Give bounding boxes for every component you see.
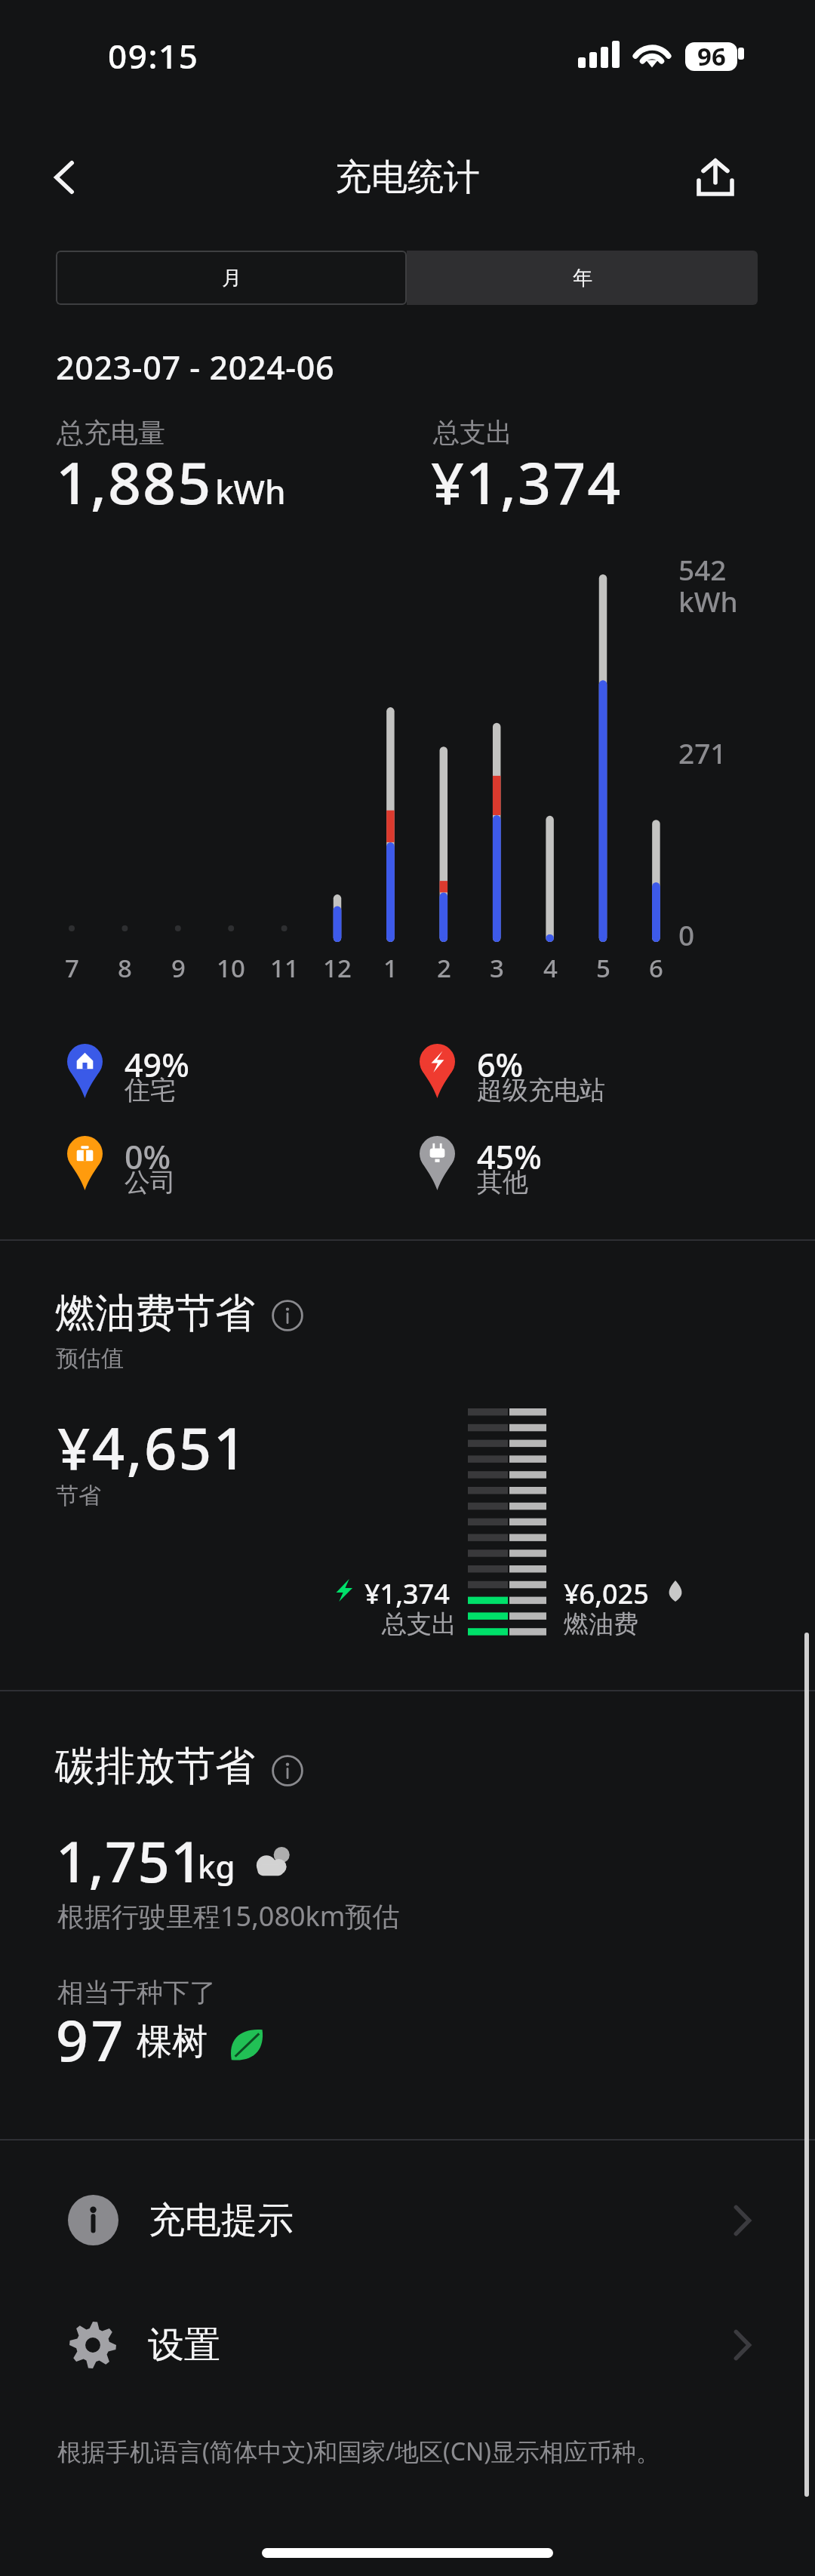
staticText: ¥1,374 xyxy=(364,1575,450,1612)
staticText: 271 xyxy=(678,734,727,771)
staticText: 49% xyxy=(125,1042,189,1087)
staticText: 12 xyxy=(323,951,352,985)
staticText: 2023-07 - 2024-06 xyxy=(56,345,335,389)
staticText: 月 xyxy=(222,266,241,291)
staticText: 4 xyxy=(543,951,558,985)
staticText: 超级充电站 xyxy=(477,1074,605,1106)
staticText: 7 xyxy=(65,951,79,985)
staticText: 碳排放节省 xyxy=(55,1741,255,1792)
staticText: 相当于种下了 xyxy=(57,1976,216,2009)
staticText: 45% xyxy=(477,1134,542,1179)
staticText: 3 xyxy=(490,951,504,985)
staticText: 总支出 xyxy=(382,1608,457,1640)
staticText: 总充电量 xyxy=(57,416,165,450)
staticText: 0% xyxy=(125,1134,171,1179)
staticText: 预估值 xyxy=(56,1344,124,1373)
staticText: 09:15 xyxy=(108,33,199,78)
staticText: 充电统计 xyxy=(335,155,480,200)
staticText: kWh xyxy=(678,582,738,620)
staticText: 9 xyxy=(171,951,186,985)
staticText: 其他 xyxy=(477,1166,528,1199)
staticText: 97 xyxy=(56,2001,126,2078)
button[interactable]: 充电提示 xyxy=(0,2158,815,2282)
staticText: 1 xyxy=(383,951,398,985)
button[interactable] xyxy=(420,1136,455,1190)
staticText: 542 xyxy=(678,550,727,588)
staticText: 11 xyxy=(270,951,299,985)
staticText: 1,751 xyxy=(56,1823,204,1899)
button[interactable]: 月 xyxy=(56,251,407,305)
staticText: 棵树 xyxy=(137,2020,208,2064)
staticText: 根据手机语言(简体中文)和国家/地区(CN)显示相应币种。 xyxy=(57,2435,660,2468)
staticText: 1,885 xyxy=(56,442,213,522)
staticText: 年 xyxy=(573,266,592,291)
staticText: ¥6,025 xyxy=(564,1575,649,1612)
button[interactable]: 设置 xyxy=(0,2282,815,2407)
staticText: 节省 xyxy=(56,1482,101,1510)
button[interactable]: Back xyxy=(23,136,106,219)
staticText: 充电提示 xyxy=(149,2198,294,2243)
staticText: kWh xyxy=(215,469,286,514)
staticText: 10 xyxy=(217,951,245,985)
button[interactable] xyxy=(67,1044,103,1098)
staticText: ¥4,651 xyxy=(57,1408,248,1487)
staticText: 公司 xyxy=(125,1166,176,1199)
staticText: 住宅 xyxy=(125,1074,176,1106)
button[interactable] xyxy=(67,1136,103,1190)
staticText: 6% xyxy=(477,1042,524,1087)
staticText: 8 xyxy=(118,951,132,985)
staticText: 96 xyxy=(697,39,726,73)
staticText: 设置 xyxy=(148,2322,220,2368)
staticText: 0 xyxy=(678,916,695,953)
staticText: 2 xyxy=(437,951,451,985)
staticText: 燃油费节省 xyxy=(55,1288,255,1339)
staticText: ¥1,374 xyxy=(431,442,623,522)
staticText: 5 xyxy=(596,951,610,985)
button[interactable]: 年 xyxy=(407,251,758,305)
staticText: 6 xyxy=(649,951,663,985)
button[interactable]: Share xyxy=(674,136,757,219)
button[interactable] xyxy=(420,1044,455,1098)
staticText: 根据行驶里程15,080km预估 xyxy=(57,1897,400,1934)
staticText: 燃油费 xyxy=(564,1608,638,1640)
staticText: 总支出 xyxy=(433,416,512,449)
staticText: kg xyxy=(198,1845,235,1888)
